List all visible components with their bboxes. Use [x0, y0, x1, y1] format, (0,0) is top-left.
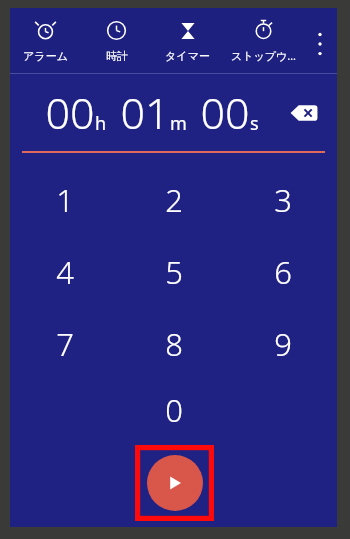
button[interactable]: 3: [228, 164, 337, 236]
staticText: ストップウ…: [231, 48, 296, 63]
staticText: 7: [56, 323, 74, 365]
staticText: 6: [274, 251, 292, 293]
staticText: m: [170, 111, 187, 136]
staticText: 2: [165, 179, 183, 221]
button[interactable]: タイマー: [152, 8, 223, 73]
staticText: s: [250, 111, 259, 136]
staticText: 01: [120, 83, 170, 142]
button[interactable]: アラーム: [10, 8, 81, 73]
button[interactable]: 8: [119, 308, 228, 380]
staticText: 3: [274, 179, 292, 221]
button[interactable]: 2: [119, 164, 228, 236]
button[interactable]: Start timer: [147, 455, 203, 511]
staticText: 9: [274, 323, 292, 365]
button[interactable]: 時計: [81, 8, 152, 73]
staticText: 時計: [106, 49, 128, 63]
staticText: アラーム: [23, 49, 68, 63]
button[interactable]: 0: [119, 380, 228, 440]
button[interactable]: 4: [10, 236, 119, 308]
button[interactable]: More options: [303, 8, 337, 73]
staticText: 00: [200, 83, 250, 142]
staticText: 8: [165, 323, 183, 365]
button[interactable]: 1: [10, 164, 119, 236]
button[interactable]: ストップウ…: [223, 8, 303, 73]
staticText: 5: [165, 251, 183, 293]
button[interactable]: Backspace: [281, 90, 327, 136]
button[interactable]: 9: [228, 308, 337, 380]
staticText: 00: [45, 83, 95, 142]
staticText: 1: [56, 179, 74, 221]
button[interactable]: 7: [10, 308, 119, 380]
button[interactable]: 5: [119, 236, 228, 308]
staticText: タイマー: [165, 49, 210, 63]
button[interactable]: 6: [228, 236, 337, 308]
staticText: h: [95, 111, 107, 136]
staticText: 0: [165, 389, 183, 431]
staticText: 4: [56, 251, 74, 293]
